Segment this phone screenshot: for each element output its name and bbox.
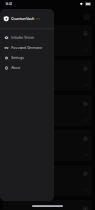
button[interactable] <box>3 130 92 161</box>
button[interactable] <box>3 25 92 56</box>
button[interactable]: Password Generator <box>0 43 54 53</box>
staticText: Settings <box>11 56 24 60</box>
staticText: beta <box>36 17 40 20</box>
button[interactable] <box>3 165 92 196</box>
button[interactable]: Settings <box>0 53 54 63</box>
button[interactable]: Intruder Vision <box>0 33 54 43</box>
staticText: Intruder Vision <box>11 36 34 39</box>
staticText: 9:41 <box>5 2 12 6</box>
staticText: QuantumVault <box>11 17 34 21</box>
staticText: Password Generator <box>11 46 42 50</box>
button[interactable]: About <box>0 63 54 73</box>
staticText: About <box>11 66 20 70</box>
button[interactable] <box>3 60 92 91</box>
button[interactable] <box>3 200 92 210</box>
button[interactable] <box>3 95 92 126</box>
